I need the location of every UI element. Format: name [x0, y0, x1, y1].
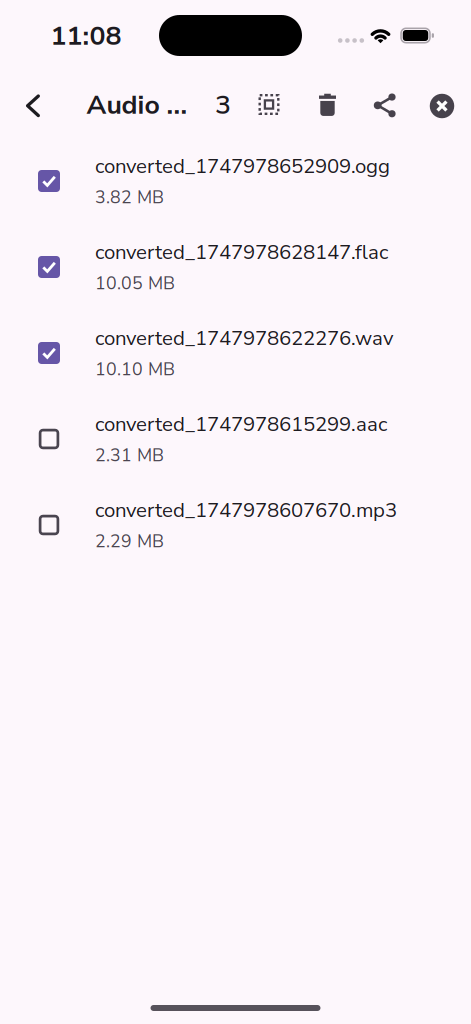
staticText: converted_1747978607670.mp3 [95, 496, 397, 524]
staticText: converted_1747978615299.aac [95, 410, 387, 438]
button[interactable]: Back [18, 86, 48, 125]
button[interactable]: Share [366, 86, 404, 125]
button[interactable]: converted_1747978615299.aac [0, 396, 471, 482]
button[interactable]: converted_1747978628147.flac [0, 224, 471, 310]
staticText: 11:08 [50, 18, 121, 54]
staticText: 10.05 MB [95, 271, 175, 295]
button[interactable]: Close selection [424, 88, 460, 124]
staticText: 3.82 MB [95, 185, 164, 209]
staticText: converted_1747978622276.wav [95, 324, 394, 352]
button[interactable]: converted_1747978622276.wav [0, 310, 471, 396]
staticText: 3 [215, 87, 231, 123]
button[interactable]: Delete [311, 86, 344, 124]
staticText: 10.10 MB [95, 357, 175, 381]
staticText: 2.31 MB [95, 443, 164, 467]
staticText: converted_1747978652909.ogg [95, 152, 390, 180]
staticText: 2.29 MB [95, 529, 164, 553]
button[interactable]: converted_1747978652909.ogg [0, 138, 471, 224]
staticText: converted_1747978628147.flac [95, 238, 388, 266]
button[interactable]: converted_1747978607670.mp3 [0, 482, 471, 568]
staticText: Audio ... [86, 87, 187, 123]
button[interactable]: Select all [250, 86, 287, 123]
